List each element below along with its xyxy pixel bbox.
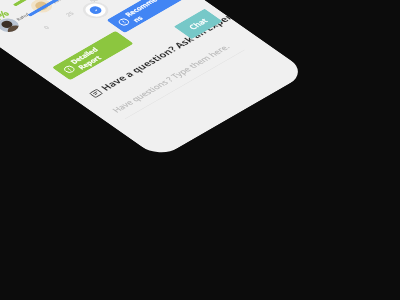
- staticText: Detailed Report: [172, 10, 233, 52]
- button[interactable]: Recommendations: [210, 0, 299, 16]
- staticText: 0: [146, 3, 156, 9]
- staticText: Parameters achieved WRT to other kids: [73, 0, 202, 2]
- staticText: 4%: [91, 0, 117, 3]
- button[interactable]: Detailed Report: [155, 5, 239, 63]
- staticText: Have a question? Ask an Expert.: [202, 0, 339, 80]
- staticText: Have questions ? Type them here.: [214, 14, 338, 101]
